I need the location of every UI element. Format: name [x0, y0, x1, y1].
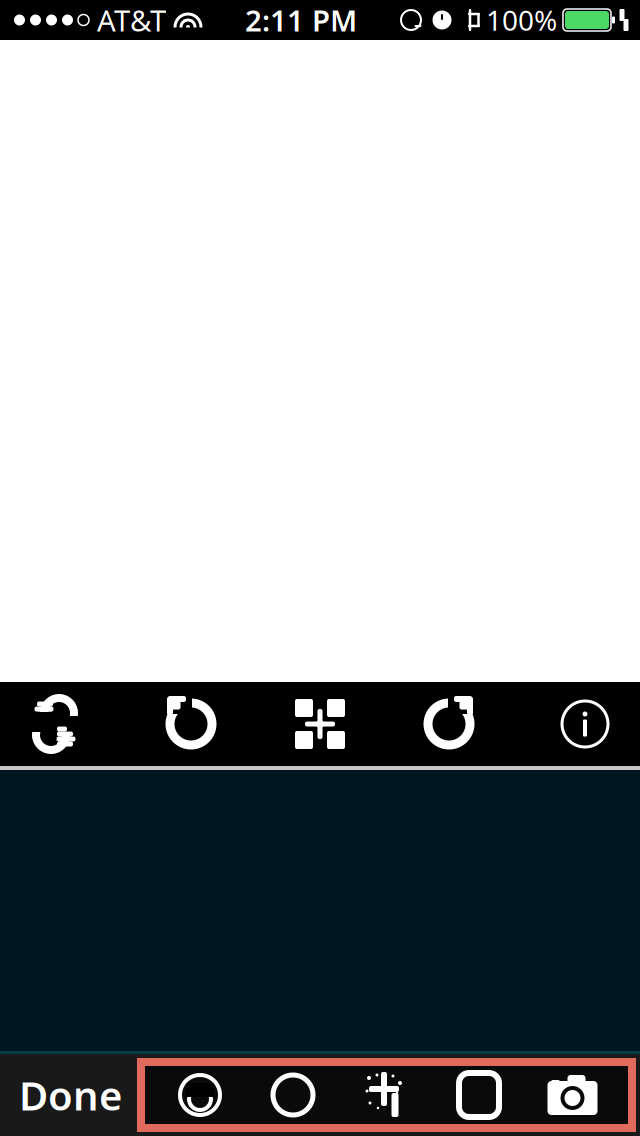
button[interactable]: Blur — [246, 1066, 339, 1124]
button[interactable]: Move — [272, 682, 368, 766]
button[interactable]: Flip — [0, 682, 110, 766]
button[interactable]: Stickers — [153, 1066, 246, 1124]
button[interactable]: Undo — [143, 682, 239, 766]
button[interactable]: Info — [530, 682, 640, 766]
button[interactable]: Camera — [525, 1066, 619, 1124]
staticText: Done — [19, 1068, 122, 1121]
button[interactable]: Done — [4, 1054, 137, 1136]
staticText: 100% — [486, 1, 557, 39]
button[interactable]: Frame — [432, 1066, 525, 1124]
staticText: 2:11 PM — [245, 0, 357, 39]
button[interactable]: Redo — [401, 682, 497, 766]
staticText: AT&T — [97, 0, 166, 39]
button[interactable]: Enhance — [339, 1066, 432, 1124]
